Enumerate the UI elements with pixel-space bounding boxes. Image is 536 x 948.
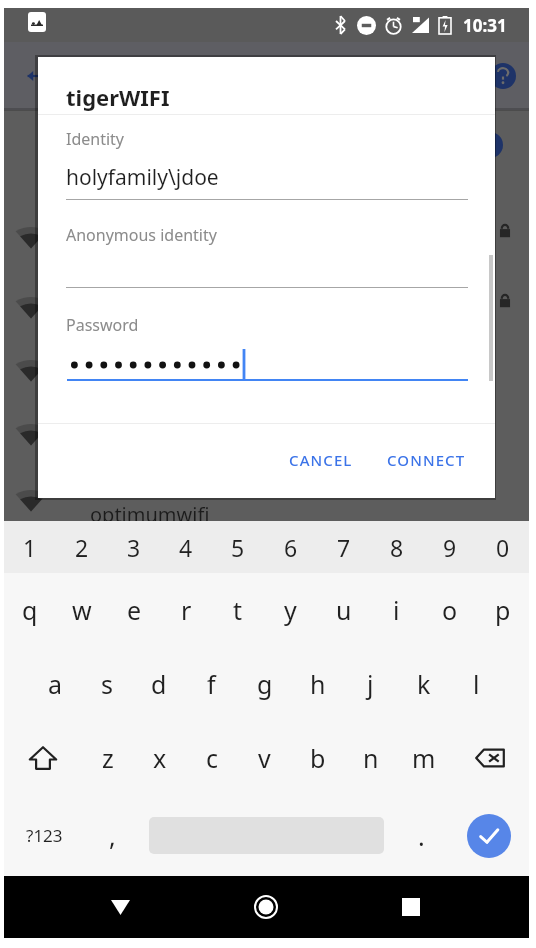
staticText: t — [233, 593, 243, 627]
staticText: holyfamily\jdoe — [66, 163, 219, 192]
staticText: 7 — [337, 532, 351, 563]
button[interactable]: Shift — [4, 721, 82, 795]
staticText: 2 — [75, 532, 89, 563]
staticText: m — [412, 741, 436, 775]
button[interactable]: Back — [96, 883, 144, 931]
button[interactable]: q — [4, 573, 56, 647]
button[interactable]: l — [450, 647, 503, 721]
button[interactable]: CONNECT — [379, 440, 474, 480]
staticText: x — [153, 741, 167, 775]
button[interactable]: Help — [481, 54, 525, 98]
button[interactable]: 8 — [370, 521, 423, 573]
staticText: 8 — [390, 532, 404, 563]
button[interactable]: w — [56, 573, 108, 647]
staticText: l — [473, 667, 480, 701]
button[interactable]: Space — [140, 795, 393, 876]
button[interactable]: a — [29, 647, 81, 721]
staticText: e — [127, 593, 142, 627]
staticText: g — [257, 667, 273, 701]
button[interactable]: d — [133, 647, 185, 721]
staticText: , — [109, 819, 116, 853]
staticText: p — [495, 593, 511, 627]
staticText: a — [48, 667, 63, 701]
button[interactable]: . — [393, 795, 449, 876]
staticText: s — [101, 667, 113, 701]
button[interactable]: 4 — [160, 521, 212, 573]
button[interactable]: n — [344, 721, 397, 795]
staticText: ?123 — [26, 824, 63, 847]
button[interactable]: o — [423, 573, 476, 647]
button[interactable]: p — [476, 573, 529, 647]
staticText: Anonymous identity — [66, 224, 217, 246]
staticText: 9 — [443, 532, 457, 563]
button[interactable]: Home — [242, 883, 290, 931]
button[interactable]: h — [291, 647, 344, 721]
button[interactable]: y — [264, 573, 317, 647]
staticText: h — [310, 667, 326, 701]
button[interactable]: e — [108, 573, 160, 647]
button[interactable]: 1 — [4, 521, 56, 573]
button[interactable]: b — [291, 721, 344, 795]
staticText: tigerWIFI — [66, 82, 170, 112]
staticText: 3 — [127, 532, 141, 563]
button[interactable]: 6 — [264, 521, 317, 573]
button[interactable]: Back — [12, 54, 56, 98]
staticText: optimumwifi — [90, 501, 210, 528]
button[interactable]: ?123 — [4, 795, 84, 876]
button[interactable]: CANCEL — [281, 440, 361, 480]
button[interactable]: r — [160, 573, 212, 647]
button[interactable]: x — [134, 721, 186, 795]
button[interactable]: , — [84, 795, 140, 876]
button[interactable]: g — [238, 647, 291, 721]
staticText: f — [207, 667, 216, 701]
button[interactable]: Recents — [387, 883, 435, 931]
staticText: Password — [66, 314, 139, 336]
button[interactable]: t — [212, 573, 264, 647]
button[interactable]: k — [397, 647, 450, 721]
button[interactable]: c — [186, 721, 238, 795]
staticText: q — [22, 593, 38, 627]
staticText: k — [417, 667, 431, 701]
staticText: d — [151, 667, 167, 701]
staticText: b — [310, 741, 326, 775]
button[interactable]: f — [185, 647, 238, 721]
staticText: Identity — [66, 128, 125, 150]
staticText: j — [367, 667, 374, 701]
button[interactable]: u — [317, 573, 370, 647]
staticText: 1 — [23, 532, 37, 563]
button[interactable]: s — [81, 647, 133, 721]
staticText: . — [418, 819, 425, 853]
button[interactable]: m — [397, 721, 450, 795]
staticText: o — [442, 593, 458, 627]
staticText: CONNECT — [387, 450, 466, 470]
button[interactable]: 5 — [212, 521, 264, 573]
staticText: 0 — [496, 532, 510, 563]
button[interactable]: 2 — [56, 521, 108, 573]
button[interactable]: i — [370, 573, 423, 647]
staticText: u — [336, 593, 352, 627]
button[interactable]: 9 — [423, 521, 476, 573]
staticText: 6 — [284, 532, 298, 563]
staticText: r — [181, 593, 192, 627]
staticText: y — [284, 593, 297, 627]
staticText: n — [363, 741, 379, 775]
staticText: i — [393, 593, 400, 627]
button[interactable]: z — [82, 721, 134, 795]
button[interactable]: v — [238, 721, 291, 795]
button[interactable]: Backspace — [450, 721, 529, 795]
button[interactable]: Enter — [449, 795, 529, 876]
staticText: w — [72, 593, 92, 627]
staticText: CANCEL — [289, 450, 353, 470]
staticText: v — [258, 741, 271, 775]
button[interactable]: 7 — [317, 521, 370, 573]
button[interactable]: j — [344, 647, 397, 721]
staticText: 4 — [179, 532, 193, 563]
button[interactable]: 0 — [476, 521, 529, 573]
staticText: 5 — [231, 532, 245, 563]
staticText: z — [102, 741, 114, 775]
staticText: 10:31 — [463, 14, 507, 37]
staticText: c — [206, 741, 219, 775]
button[interactable]: 3 — [108, 521, 160, 573]
